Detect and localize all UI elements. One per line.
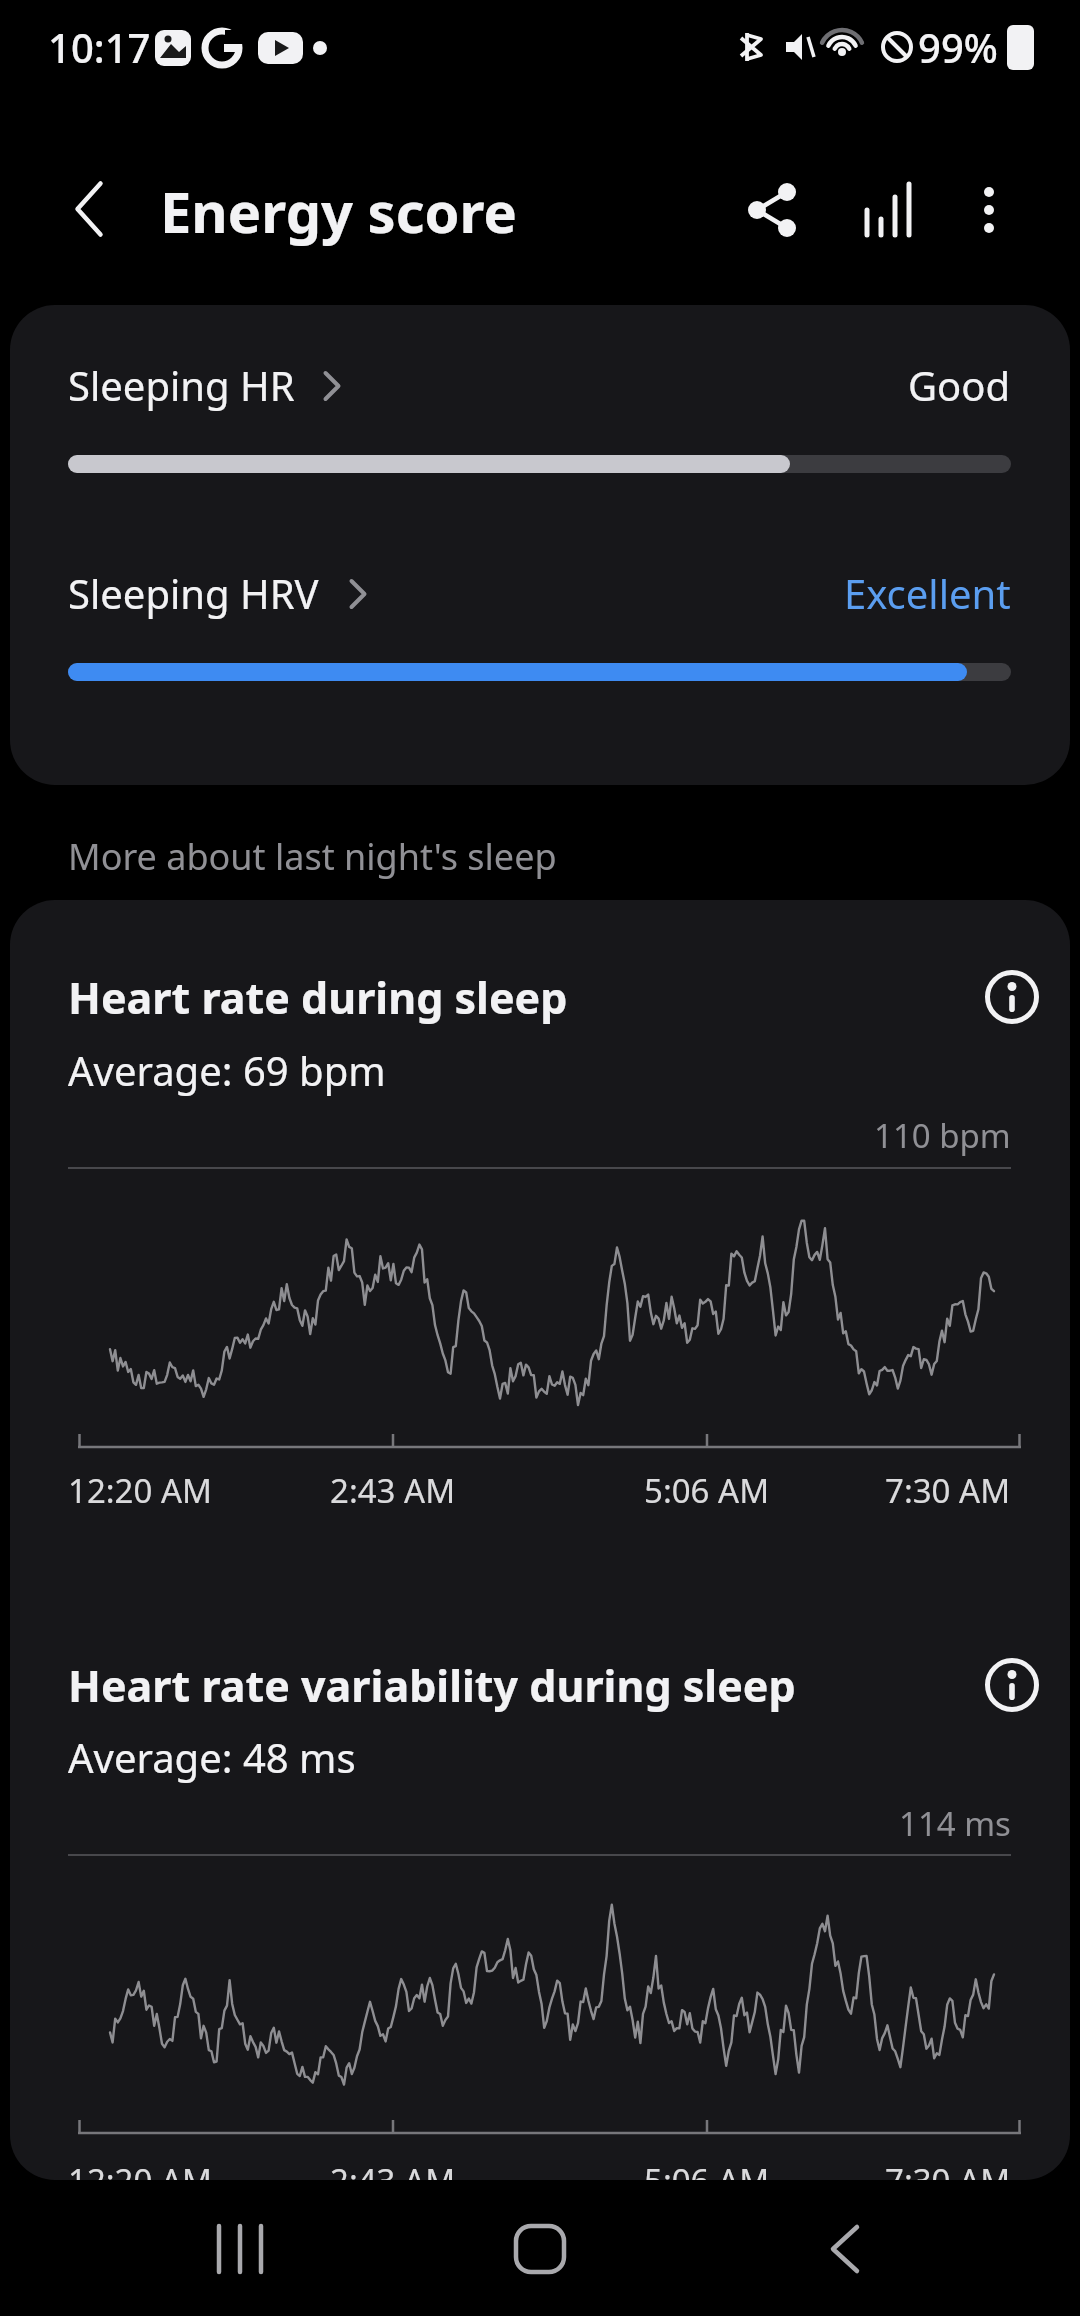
staticText: 99%	[918, 20, 998, 74]
staticText: Good	[908, 358, 1011, 412]
staticText: Heart rate during sleep	[68, 968, 568, 1027]
staticText: 5:06 AM	[644, 1468, 770, 1513]
button[interactable]	[48, 168, 132, 252]
button[interactable]	[450, 2200, 630, 2300]
button[interactable]	[947, 168, 1031, 252]
staticText: 10:17	[48, 20, 151, 74]
staticText: Sleeping HRV	[68, 566, 319, 620]
button[interactable]	[150, 2200, 330, 2300]
staticText: 12:20 AM	[68, 1468, 212, 1513]
staticText: 114 ms	[899, 1801, 1011, 1846]
staticText: More about last night's sleep	[68, 832, 557, 881]
button[interactable]	[40, 340, 1040, 490]
staticText: 12:20 AM	[68, 2158, 212, 2180]
staticText: 110 bpm	[874, 1113, 1011, 1158]
button[interactable]	[733, 168, 817, 252]
staticText: 5:06 AM	[644, 2158, 770, 2180]
button[interactable]	[977, 1650, 1047, 1720]
staticText: 7:30 AM	[885, 2158, 1011, 2180]
button[interactable]	[755, 2200, 935, 2300]
staticText: 2:43 AM	[330, 1468, 456, 1513]
button[interactable]	[977, 962, 1047, 1032]
staticText: 2:43 AM	[330, 2158, 456, 2180]
staticText: Average: 48 ms	[68, 1730, 356, 1784]
button[interactable]	[846, 168, 930, 252]
staticText: Average: 69 bpm	[68, 1043, 386, 1097]
staticText: Excellent	[844, 566, 1011, 620]
staticText: Sleeping HR	[68, 358, 295, 412]
staticText: Heart rate variability during sleep	[68, 1656, 796, 1715]
staticText: Energy score	[160, 173, 517, 249]
staticText: 7:30 AM	[885, 1468, 1011, 1513]
button[interactable]	[40, 548, 1040, 698]
